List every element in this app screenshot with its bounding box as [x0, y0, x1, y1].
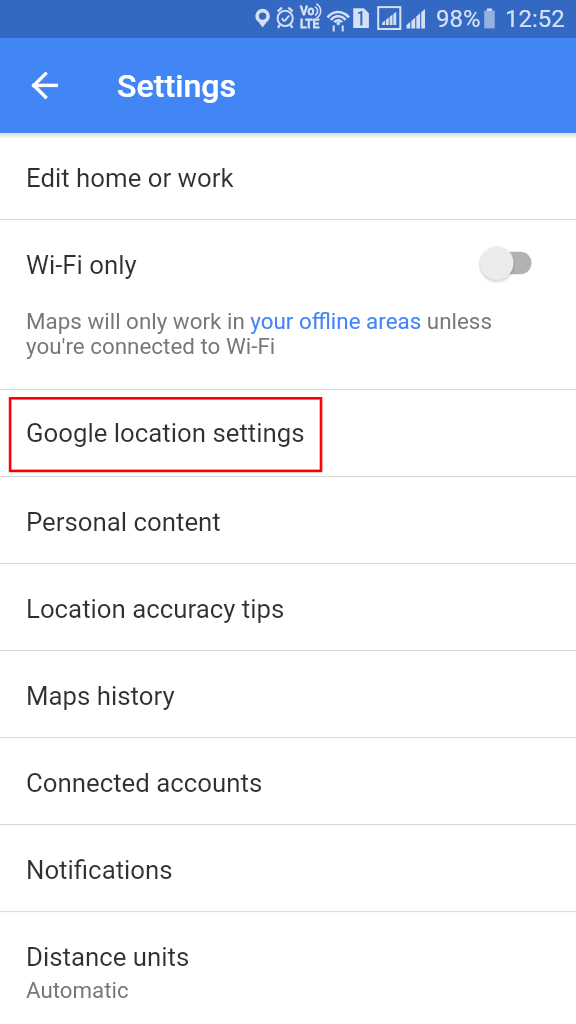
button[interactable]: Back	[22, 61, 71, 110]
button[interactable]: Connected accounts	[0, 738, 576, 824]
staticText: Connected accounts	[26, 768, 263, 798]
button[interactable]: Location accuracy tips	[0, 564, 576, 650]
button[interactable]: Edit home or work	[0, 133, 576, 219]
button[interactable]: Wi-Fi only	[0, 220, 576, 389]
staticText: Notifications	[26, 855, 173, 885]
staticText: Edit home or work	[26, 163, 234, 193]
button[interactable]: Distance units	[0, 912, 576, 1018]
staticText: Personal content	[26, 507, 221, 537]
button[interactable]: Personal content	[0, 477, 576, 563]
staticText: Automatic	[26, 977, 129, 1003]
button[interactable]: Maps history	[0, 651, 576, 737]
button[interactable]: Google location settings	[0, 390, 576, 476]
staticText: Google location settings	[26, 418, 305, 448]
staticText: Maps history	[26, 681, 175, 711]
staticText: Settings	[117, 67, 237, 105]
staticText: Location accuracy tips	[26, 594, 285, 624]
button[interactable]: Notifications	[0, 825, 576, 911]
staticText: 98%	[436, 5, 481, 33]
staticText: 12:52	[505, 5, 565, 33]
staticText: Wi-Fi only	[26, 250, 137, 280]
staticText: Maps will only work in your offline area…	[26, 308, 504, 359]
staticText: LTE	[300, 17, 320, 31]
staticText: Distance units	[26, 942, 190, 972]
staticText: Vo	[300, 4, 315, 18]
